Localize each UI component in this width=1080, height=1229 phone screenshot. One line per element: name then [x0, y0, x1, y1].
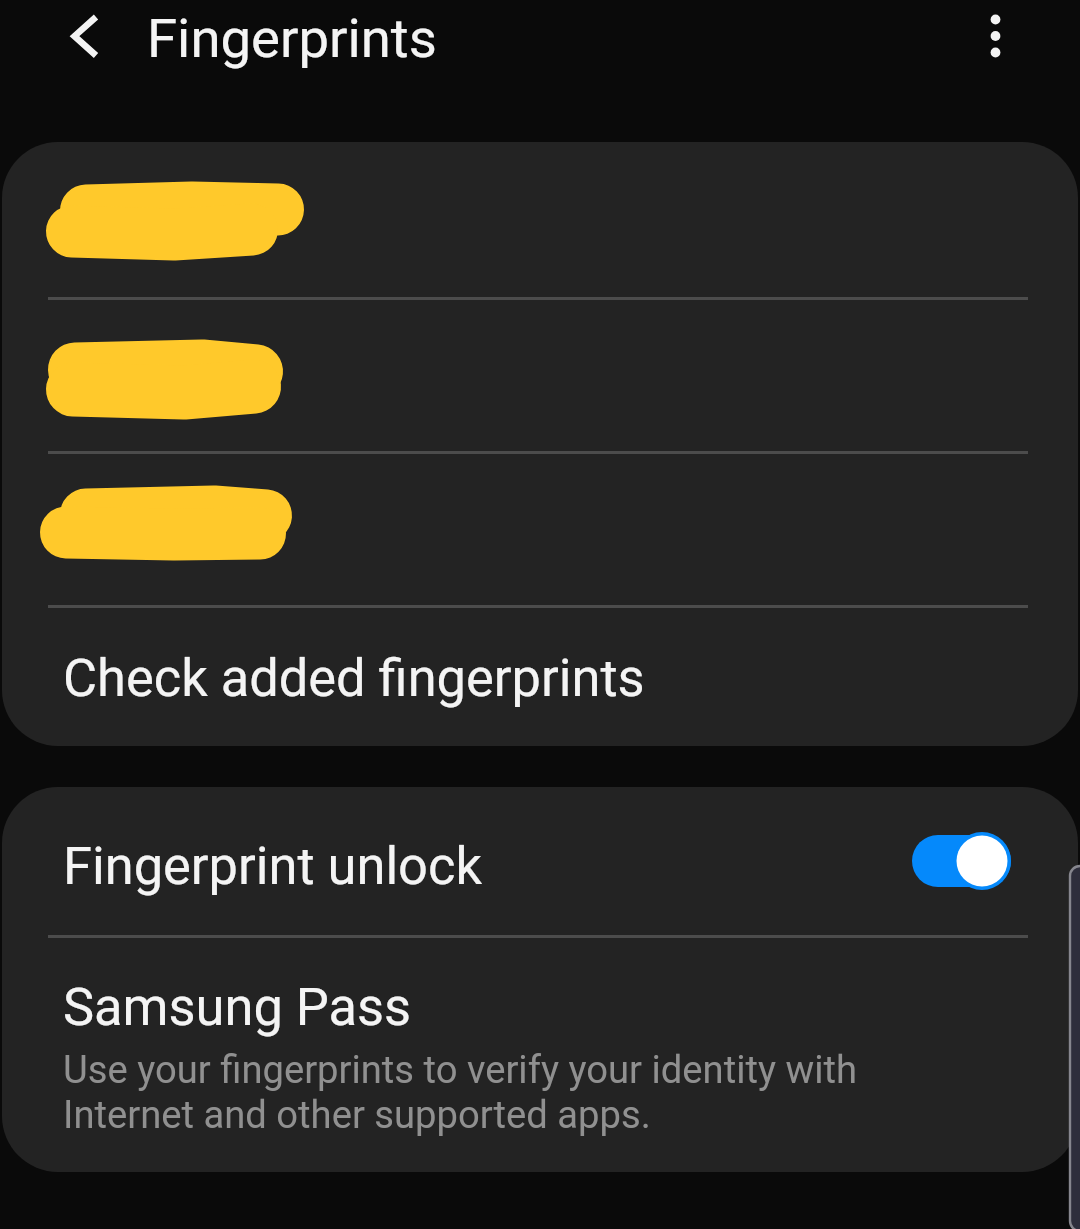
button[interactable]: Fingerprint unlock — [2, 787, 1078, 935]
staticText: Use your fingerprints to verify your ide… — [63, 1048, 857, 1138]
button[interactable]: More options — [960, 0, 1032, 72]
staticText: Fingerprint unlock — [63, 835, 482, 896]
staticText: Check added fingerprints — [63, 647, 645, 708]
button[interactable]: Fingerprint — [2, 300, 1078, 451]
button[interactable]: Fingerprint — [2, 142, 1078, 297]
button[interactable]: Samsung Pass — [2, 938, 1078, 1172]
staticText: Fingerprints — [147, 6, 437, 70]
button[interactable]: Fingerprint unlock — [912, 833, 1011, 889]
staticText: Samsung Pass — [63, 976, 412, 1037]
button[interactable]: Navigate up — [39, 0, 111, 72]
button[interactable]: Fingerprint — [2, 454, 1078, 605]
button[interactable]: Check added fingerprints — [2, 608, 1078, 746]
